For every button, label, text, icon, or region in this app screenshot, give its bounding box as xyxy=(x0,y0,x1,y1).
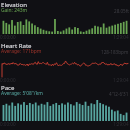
staticText: Average: 171bpm xyxy=(1,48,42,55)
staticText: Gain: 243m xyxy=(1,7,28,14)
staticText: 0:00:00 xyxy=(0,77,16,83)
staticText: 4'12-6'31 xyxy=(109,91,129,97)
staticText: Elevation xyxy=(1,0,28,8)
staticText: 1:29:04 xyxy=(113,77,129,83)
staticText: 0:00:00 xyxy=(0,34,16,40)
staticText: 1:29:04 xyxy=(113,34,129,40)
staticText: 1:29:04 xyxy=(113,121,129,127)
staticText: Heart Rate xyxy=(1,41,32,49)
staticText: 128-183bpm xyxy=(101,49,129,55)
staticText: 0:00:00 xyxy=(0,121,16,127)
staticText: Pace xyxy=(1,83,15,91)
staticText: Average: 5'08"/km xyxy=(1,90,43,97)
staticText: 28.05ft xyxy=(114,8,129,14)
